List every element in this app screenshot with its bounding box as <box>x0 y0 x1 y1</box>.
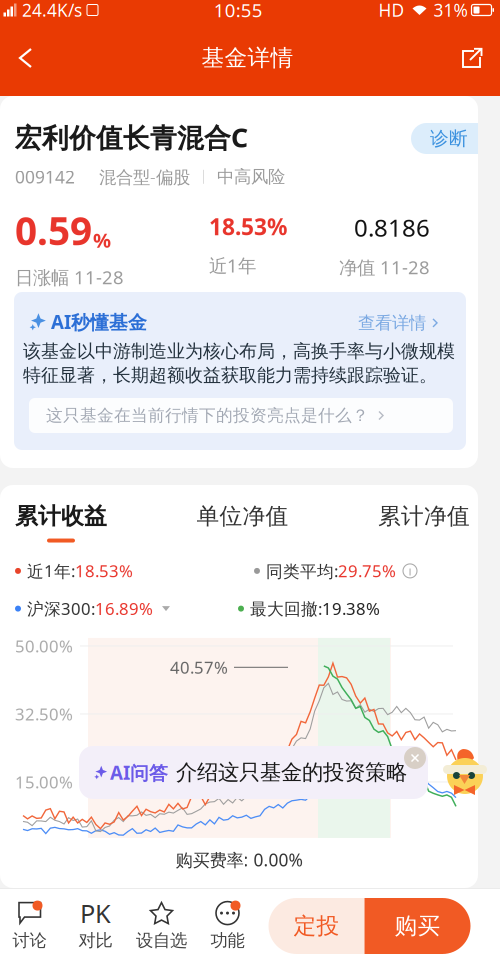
staticText: 中高风险 <box>217 166 285 188</box>
staticText: 特征显著，长期超额收益获取能力需持续跟踪验证。 <box>23 364 437 387</box>
staticText: 24.4K/s <box>22 0 82 22</box>
staticText: 0.59 <box>15 204 92 257</box>
button[interactable]: 单位净值 <box>196 502 288 543</box>
staticText: 宏利价值长青混合C <box>15 119 248 155</box>
staticText: 009142 <box>15 165 75 189</box>
button[interactable]: 诊断 <box>411 123 497 154</box>
staticText: 最大回撤: <box>250 597 322 620</box>
staticText: AI问答 <box>110 760 168 785</box>
button[interactable]: Share <box>447 25 497 91</box>
button[interactable]: 累计收益 <box>15 502 107 543</box>
button[interactable]: 查看详情 <box>358 312 438 334</box>
staticText: 讨论 <box>12 930 46 951</box>
staticText: 混合型-偏股 <box>99 165 190 189</box>
staticText: 19.38% <box>322 597 380 620</box>
staticText: 50.00% <box>15 635 73 657</box>
staticText: 近1年: <box>27 560 75 582</box>
staticText: 10:55 <box>214 0 263 23</box>
staticText: 沪深300: <box>27 597 95 620</box>
button[interactable]: 讨论 <box>0 895 62 957</box>
staticText: i <box>408 563 411 579</box>
staticText: % <box>93 226 111 254</box>
button[interactable]: 设自选 <box>128 895 194 957</box>
staticText: PK <box>80 896 111 930</box>
staticText: 40.57% <box>170 656 228 679</box>
staticText: 日涨幅 11-28 <box>15 265 124 290</box>
button[interactable]: 定投 <box>268 898 364 954</box>
staticText: 购买费率: 0.00% <box>175 848 302 872</box>
staticText: 诊断 <box>430 127 468 150</box>
staticText: AI秒懂基金 <box>51 309 147 334</box>
staticText: 累计净值 <box>378 502 470 531</box>
staticText: 单位净值 <box>196 502 288 531</box>
staticText: 近1年 <box>209 253 256 278</box>
staticText: HD <box>378 0 404 22</box>
staticText: 31% <box>433 0 467 22</box>
staticText: 同类平均: <box>266 560 338 582</box>
button[interactable]: PK <box>62 895 128 957</box>
staticText: 对比 <box>78 930 112 951</box>
staticText: 该基金以中游制造业为核心布局，高换手率与小微规模 <box>23 340 455 363</box>
staticText: 累计收益 <box>15 502 107 531</box>
staticText: 介绍这只基金的投资策略 <box>176 759 407 786</box>
button[interactable]: Back <box>3 25 48 91</box>
staticText: 功能 <box>210 930 244 951</box>
button[interactable]: 累计净值 <box>378 502 470 543</box>
staticText: 18.53% <box>75 560 133 582</box>
staticText: 29.75% <box>338 560 396 582</box>
button[interactable]: 这只基金在当前行情下的投资亮点是什么？ <box>29 398 453 433</box>
staticText: 32.50% <box>15 703 73 725</box>
button[interactable]: 功能 <box>194 895 260 957</box>
staticText: 查看详情 <box>358 312 426 334</box>
button[interactable]: 购买 <box>364 898 470 954</box>
staticText: 购买 <box>394 912 440 940</box>
staticText: 16.89% <box>95 597 153 620</box>
staticText: 15.00% <box>15 771 73 793</box>
staticText: 设自选 <box>136 930 187 951</box>
button[interactable]: AI问答 <box>79 746 428 799</box>
staticText: 基金详情 <box>201 44 293 72</box>
staticText: 这只基金在当前行情下的投资亮点是什么？ <box>46 405 369 426</box>
staticText: 0.8186 <box>354 211 430 244</box>
staticText: 定投 <box>293 912 339 940</box>
staticText: 净值 11-28 <box>339 255 430 280</box>
staticText: 18.53% <box>209 211 287 242</box>
